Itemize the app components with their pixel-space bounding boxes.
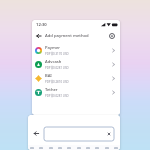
staticText: BAI [45, 73, 52, 79]
staticText: PDP ₿0.0281 USD [45, 66, 69, 70]
staticText: Paymer [45, 45, 60, 51]
button[interactable]: Advcash [32, 57, 120, 71]
staticText: Advcash [45, 59, 62, 65]
staticText: Tether [45, 87, 58, 93]
button[interactable]: Back [34, 31, 44, 41]
button[interactable] [44, 127, 114, 141]
button[interactable]: Paymer [32, 43, 120, 57]
staticText: 12:30 [36, 22, 47, 28]
button[interactable] [49, 147, 53, 149]
button[interactable] [95, 147, 99, 149]
button[interactable] [105, 147, 109, 149]
staticText: Add payment method [45, 33, 89, 39]
button[interactable]: Help [107, 31, 117, 41]
button[interactable] [77, 147, 81, 149]
staticText: PDP ₿0.2810 USD [45, 80, 69, 84]
button[interactable] [67, 147, 71, 149]
button[interactable] [58, 147, 62, 149]
button[interactable]: BAI [32, 71, 120, 85]
staticText: PDP ₿0.0281 USD [45, 94, 69, 98]
staticText: PDP ₿0.3170 USD [45, 52, 69, 56]
button[interactable]: Tether [32, 85, 120, 99]
button[interactable]: Back [32, 129, 41, 138]
button[interactable] [30, 147, 34, 149]
button[interactable] [114, 147, 118, 149]
button[interactable] [39, 147, 43, 149]
button[interactable] [86, 147, 90, 149]
